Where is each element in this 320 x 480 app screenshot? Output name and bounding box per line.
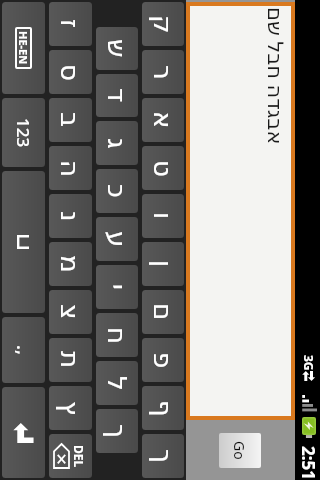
staticText: ק xyxy=(148,15,178,34)
staticText: ן xyxy=(148,260,178,268)
staticText: ש xyxy=(102,39,132,58)
button[interactable]: ., xyxy=(2,317,45,383)
staticText: ב xyxy=(55,112,85,128)
staticText: צ xyxy=(55,304,85,320)
button[interactable]: ר xyxy=(142,50,184,94)
staticText: ה xyxy=(55,160,85,177)
button[interactable]: ו xyxy=(142,194,184,238)
button[interactable]: ל xyxy=(96,361,138,405)
staticText: ף xyxy=(148,400,178,417)
staticText: ., xyxy=(11,345,36,355)
staticText: ר xyxy=(148,65,178,80)
button[interactable]: א xyxy=(142,98,184,142)
button[interactable]: ע xyxy=(96,217,138,261)
staticText: ז xyxy=(55,19,85,29)
staticText: ת xyxy=(55,351,85,369)
staticText: ו xyxy=(148,212,178,220)
button[interactable]: Space xyxy=(2,171,45,313)
button[interactable]: ת xyxy=(49,338,92,382)
staticText: ס xyxy=(55,64,85,81)
button[interactable]: ץ xyxy=(49,386,92,430)
staticText: ך xyxy=(148,449,178,463)
button[interactable]: י xyxy=(96,265,138,309)
staticText: DEL xyxy=(71,445,87,468)
button[interactable]: ה xyxy=(49,146,92,190)
button[interactable]: ך xyxy=(96,409,138,453)
button[interactable]: Delete xyxy=(49,434,92,478)
staticText: 3G xyxy=(301,355,317,371)
staticText: ד xyxy=(102,88,132,103)
button[interactable]: Enter xyxy=(2,387,45,478)
button[interactable]: ב xyxy=(49,98,92,142)
button[interactable]: ק xyxy=(142,2,184,46)
staticText: HE-EN xyxy=(16,31,31,65)
button[interactable]: ד xyxy=(96,74,138,117)
button[interactable]: ן xyxy=(142,242,184,286)
staticText: ם xyxy=(148,303,178,321)
staticText: 2:51 xyxy=(298,446,320,480)
button[interactable]: ט xyxy=(142,146,184,190)
button[interactable]: ש xyxy=(96,27,138,70)
button[interactable]: ם xyxy=(142,290,184,334)
button[interactable]: ף xyxy=(142,386,184,430)
staticText: Go xyxy=(230,441,249,460)
button[interactable]: ז xyxy=(49,2,92,46)
staticText: י xyxy=(102,284,132,290)
staticText: ג xyxy=(102,138,132,149)
staticText: פ xyxy=(148,352,178,369)
button[interactable]: ס xyxy=(49,50,92,94)
button[interactable]: פ xyxy=(142,338,184,382)
button[interactable]: כ xyxy=(96,169,138,213)
staticText: כ xyxy=(102,184,132,198)
staticText: ח xyxy=(102,327,132,344)
staticText: א xyxy=(148,111,178,129)
staticText: 123 xyxy=(12,118,35,148)
button[interactable]: 123 xyxy=(2,98,45,167)
button[interactable]: ח xyxy=(96,313,138,357)
button[interactable]: ך xyxy=(142,434,184,478)
button[interactable]: אבגדה חבל שם xyxy=(186,2,295,420)
button[interactable]: Go xyxy=(219,433,261,468)
staticText: ט xyxy=(148,160,178,177)
button[interactable]: ג xyxy=(96,121,138,165)
staticText: אבגדה חבל שם xyxy=(261,7,290,145)
button[interactable]: Switch language xyxy=(2,2,45,94)
button[interactable]: מ xyxy=(49,242,92,286)
button[interactable]: צ xyxy=(49,290,92,334)
staticText: ץ xyxy=(55,401,85,416)
staticText: מ xyxy=(55,255,85,273)
staticText: ע xyxy=(102,231,132,248)
staticText: ל xyxy=(102,376,132,391)
staticText: ך xyxy=(102,424,132,438)
staticText: נ xyxy=(55,211,85,222)
button[interactable]: נ xyxy=(49,194,92,238)
